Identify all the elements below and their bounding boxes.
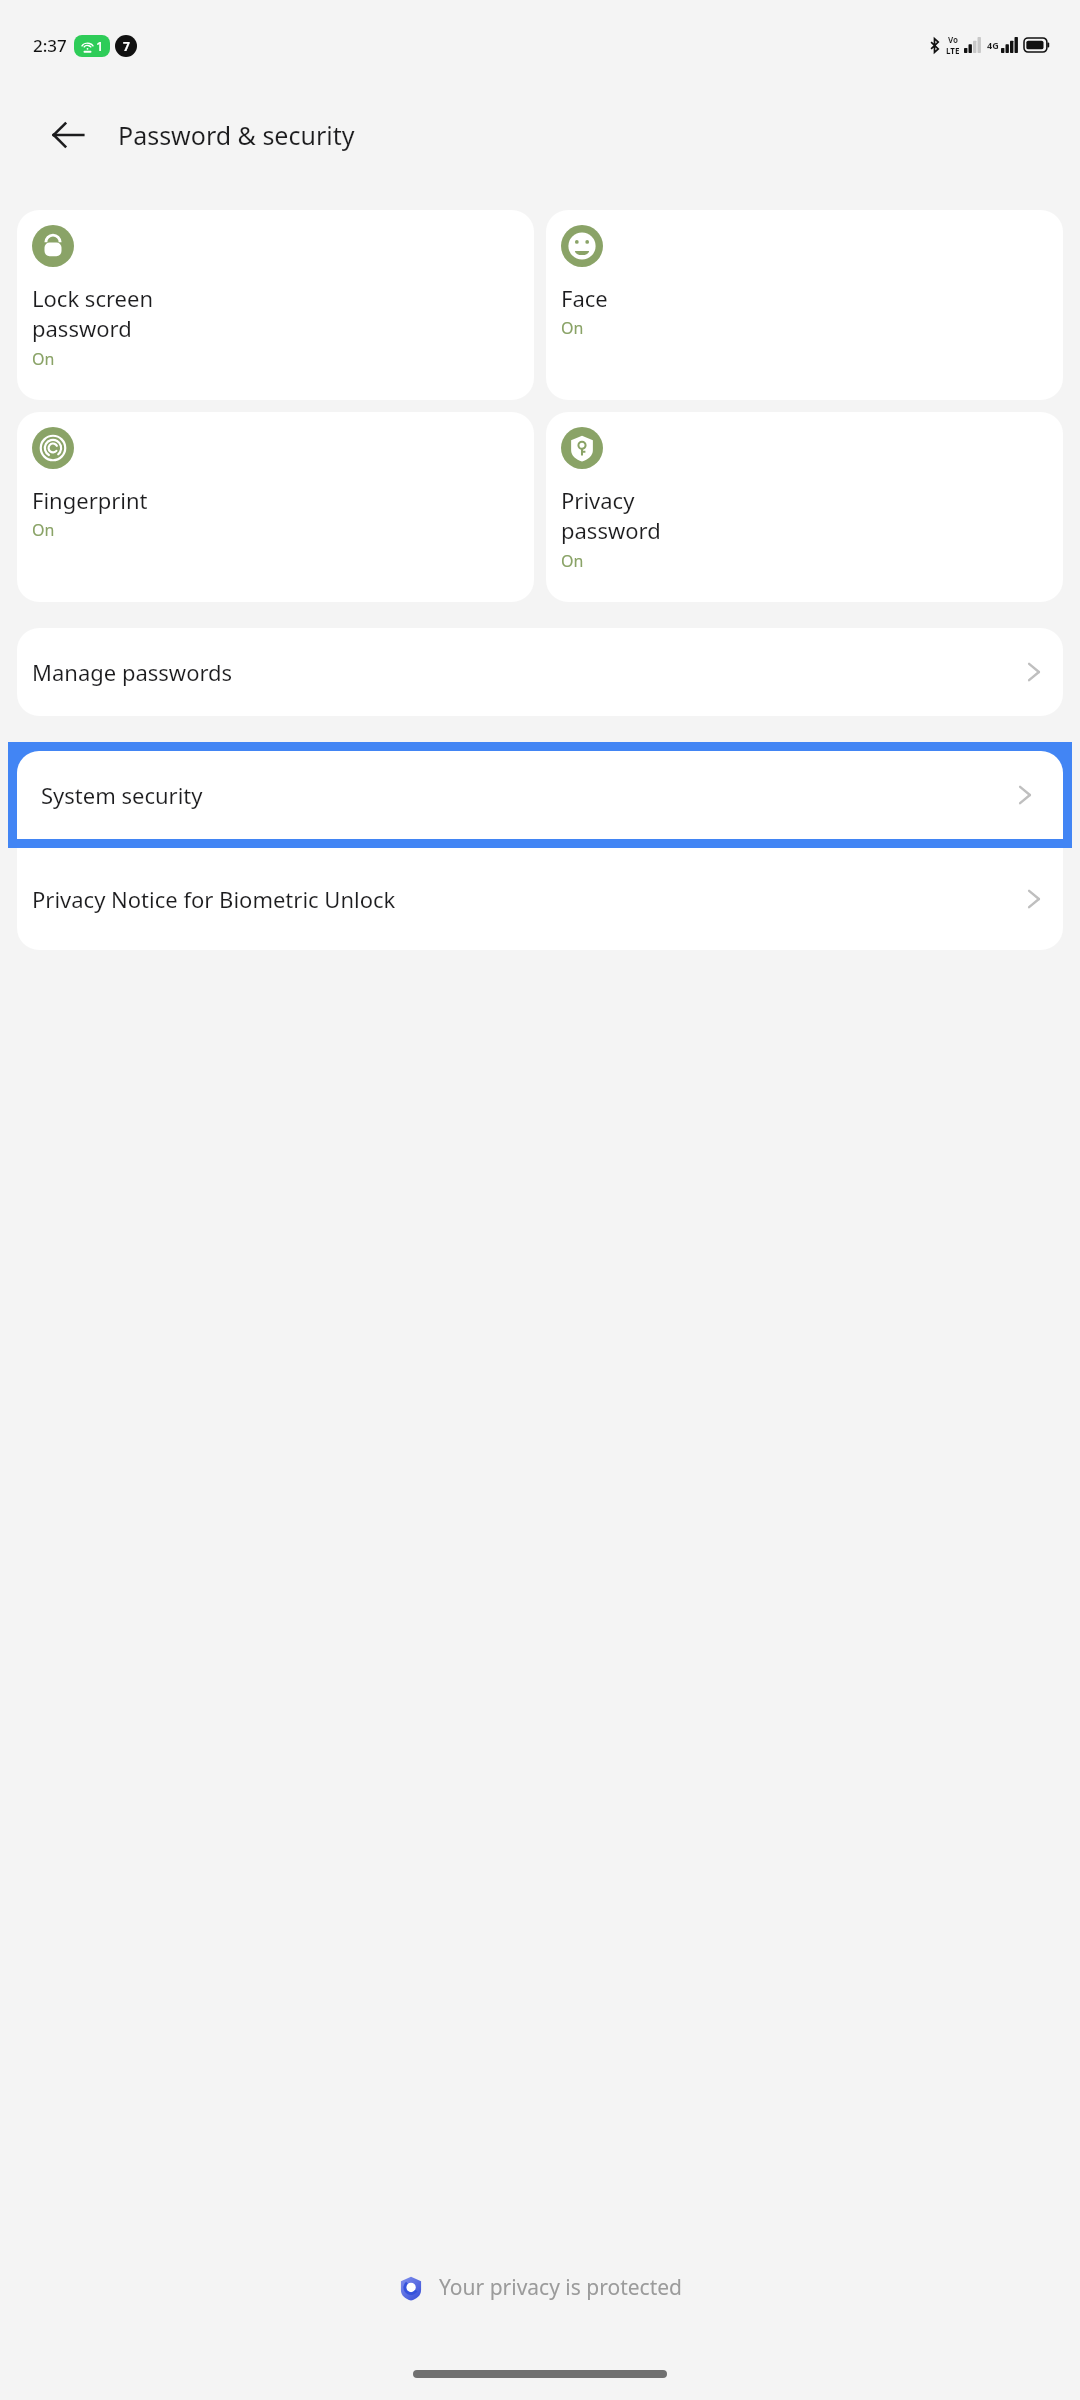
staticText: Lock screen password xyxy=(32,283,154,344)
staticText: LTE xyxy=(946,45,960,56)
button[interactable]: Face xyxy=(546,210,1063,400)
button[interactable]: Lock screen password xyxy=(17,210,534,400)
staticText: 4G xyxy=(987,39,999,51)
staticText: On xyxy=(32,348,55,370)
staticText: Privacy password xyxy=(561,485,661,546)
staticText: Face xyxy=(561,283,608,313)
button[interactable]: System security xyxy=(17,751,1063,839)
staticText: Privacy Notice for Biometric Unlock xyxy=(32,884,396,914)
staticText: 7 xyxy=(123,38,130,54)
staticText: 2:37 xyxy=(33,34,67,57)
staticText: Password & security xyxy=(118,118,355,152)
staticText: On xyxy=(561,317,584,339)
staticText: On xyxy=(561,550,584,572)
button[interactable]: Privacy password xyxy=(546,412,1063,602)
staticText: Your privacy is protected xyxy=(439,2273,683,2302)
staticText: On xyxy=(32,519,55,541)
button[interactable]: Back xyxy=(40,107,96,163)
staticText: System security xyxy=(41,780,203,810)
button[interactable]: Fingerprint xyxy=(17,412,534,602)
staticText: 1 xyxy=(96,37,104,55)
staticText: Manage passwords xyxy=(32,657,233,687)
button[interactable]: Privacy Notice for Biometric Unlock xyxy=(17,848,1063,950)
staticText: Vo xyxy=(948,34,959,45)
staticText: Fingerprint xyxy=(32,485,148,515)
button[interactable]: Manage passwords xyxy=(17,628,1063,716)
